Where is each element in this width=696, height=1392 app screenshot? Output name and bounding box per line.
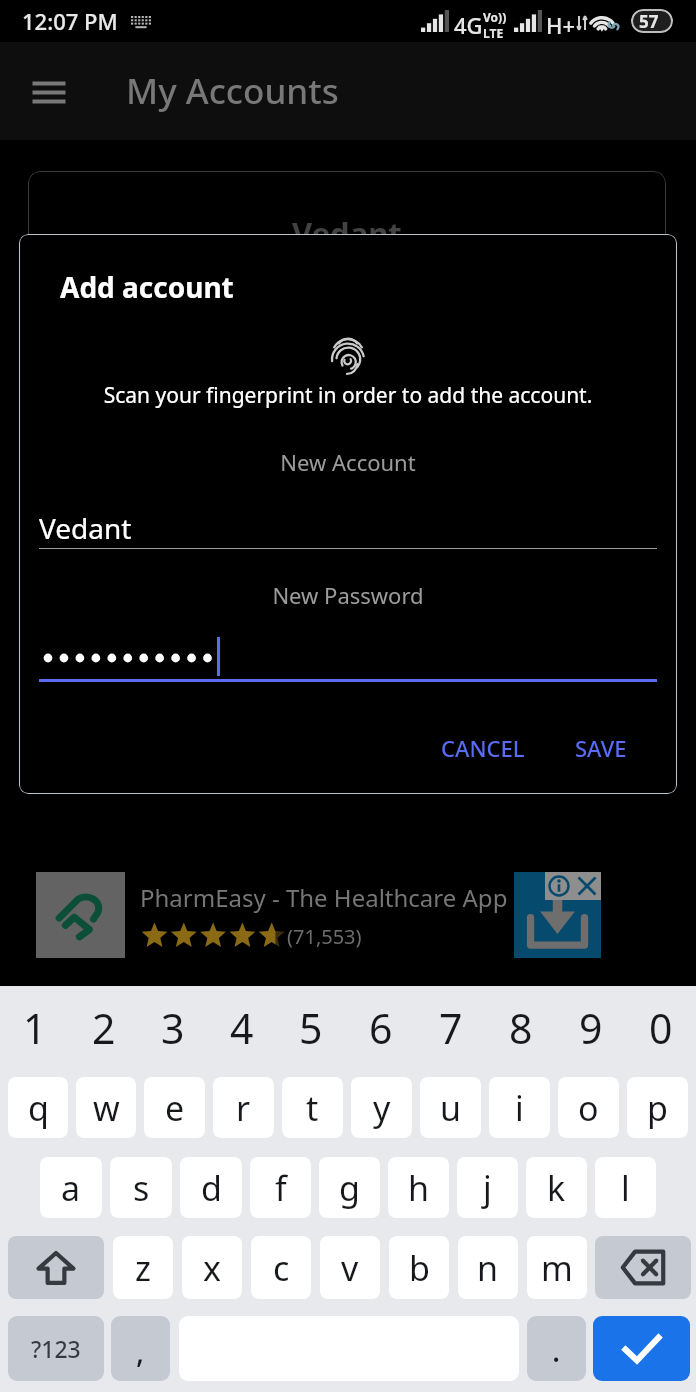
- button[interactable]: k: [526, 1157, 587, 1218]
- button[interactable]: 7: [416, 992, 486, 1064]
- button[interactable]: b: [389, 1236, 449, 1299]
- button[interactable]: e: [144, 1077, 205, 1138]
- staticText: o: [578, 1085, 599, 1131]
- button[interactable]: f: [250, 1157, 311, 1218]
- staticText: My Accounts: [126, 67, 339, 115]
- button[interactable]: w: [76, 1077, 136, 1138]
- staticText: u: [440, 1085, 462, 1131]
- staticText: LTE: [483, 25, 504, 41]
- button[interactable]: Shift: [8, 1236, 104, 1299]
- button[interactable]: Enter: [593, 1316, 690, 1381]
- staticText: Vedant: [39, 509, 132, 547]
- staticText: 9: [579, 1000, 603, 1056]
- button[interactable]: 3: [138, 992, 207, 1064]
- staticText: q: [28, 1085, 49, 1131]
- staticText: j: [483, 1165, 492, 1211]
- button[interactable]: n: [458, 1236, 518, 1299]
- button[interactable]: r: [213, 1077, 274, 1138]
- staticText: z: [135, 1245, 151, 1291]
- staticText: i: [515, 1085, 524, 1131]
- staticText: x: [203, 1245, 221, 1291]
- staticText: 57: [639, 10, 659, 33]
- button[interactable]: i: [489, 1077, 550, 1138]
- button[interactable]: Ad info: [545, 872, 573, 900]
- button[interactable]: p: [627, 1077, 688, 1138]
- staticText: n: [477, 1245, 499, 1291]
- button[interactable]: v: [320, 1236, 380, 1299]
- button[interactable]: c: [251, 1236, 311, 1299]
- button[interactable]: CANCEL: [425, 721, 541, 775]
- staticText: 5: [299, 1000, 323, 1056]
- staticText: l: [621, 1165, 630, 1211]
- button[interactable]: g: [319, 1157, 380, 1218]
- button[interactable]: Close ad: [573, 872, 601, 900]
- button[interactable]: SAVE: [559, 721, 643, 775]
- staticText: (71,553): [287, 923, 362, 950]
- staticText: f: [275, 1165, 287, 1211]
- button[interactable]: t: [282, 1077, 343, 1138]
- staticText: Vo)): [483, 9, 507, 25]
- staticText: r: [236, 1085, 251, 1131]
- staticText: ?123: [31, 1333, 81, 1364]
- button[interactable]: 6: [346, 992, 416, 1064]
- staticText: c: [273, 1245, 290, 1291]
- button[interactable]: a: [40, 1157, 102, 1218]
- staticText: Scan your fingerprint in order to add th…: [19, 381, 677, 410]
- button[interactable]: .: [527, 1316, 586, 1381]
- staticText: h: [408, 1165, 430, 1211]
- button[interactable]: o: [558, 1077, 619, 1138]
- button[interactable]: PharmEasy - The Healthcare App: [36, 872, 601, 958]
- button[interactable]: x: [182, 1236, 242, 1299]
- button[interactable]: ?123: [8, 1316, 104, 1381]
- staticText: 3: [161, 1000, 185, 1056]
- staticText: d: [201, 1165, 222, 1211]
- staticText: SAVE: [575, 733, 627, 763]
- staticText: 8: [509, 1000, 533, 1056]
- button[interactable]: z: [113, 1236, 173, 1299]
- staticText: New Account: [19, 447, 677, 477]
- button[interactable]: 8: [486, 992, 556, 1064]
- button[interactable]: d: [180, 1157, 242, 1218]
- staticText: ,: [136, 1331, 145, 1372]
- staticText: H+: [546, 10, 576, 40]
- staticText: p: [647, 1085, 668, 1131]
- button[interactable]: 1: [0, 992, 69, 1064]
- staticText: s: [133, 1165, 150, 1211]
- button[interactable]: 5: [276, 992, 346, 1064]
- staticText: g: [339, 1165, 360, 1211]
- staticText: Add account: [60, 268, 234, 306]
- button[interactable]: Backspace: [595, 1236, 691, 1299]
- staticText: 6: [369, 1000, 393, 1056]
- staticText: k: [547, 1165, 566, 1211]
- button[interactable]: s: [110, 1157, 172, 1218]
- button[interactable]: u: [420, 1077, 481, 1138]
- staticText: 0: [649, 1000, 673, 1056]
- staticText: v: [341, 1245, 359, 1291]
- staticText: 4: [230, 1000, 254, 1056]
- button[interactable]: y: [351, 1077, 412, 1138]
- staticText: CANCEL: [441, 733, 525, 763]
- staticText: .: [552, 1330, 561, 1371]
- staticText: 2: [92, 1000, 116, 1056]
- button[interactable]: 0: [626, 992, 696, 1064]
- button[interactable]: 9: [556, 992, 626, 1064]
- button[interactable]: h: [388, 1157, 449, 1218]
- staticText: t: [306, 1085, 319, 1131]
- button[interactable]: 4: [207, 992, 276, 1064]
- staticText: Vedant: [292, 212, 402, 254]
- button[interactable]: m: [527, 1236, 587, 1299]
- staticText: m: [541, 1245, 573, 1291]
- button[interactable]: Open navigation menu: [25, 67, 73, 115]
- staticText: w: [93, 1085, 120, 1131]
- staticText: a: [61, 1165, 81, 1211]
- staticText: y: [373, 1085, 391, 1131]
- button[interactable]: j: [457, 1157, 518, 1218]
- button[interactable]: l: [595, 1157, 656, 1218]
- staticText: 7: [439, 1000, 463, 1056]
- button[interactable]: q: [8, 1077, 68, 1138]
- staticText: New Password: [19, 580, 677, 610]
- staticText: 1: [23, 1000, 47, 1056]
- button[interactable]: ,: [111, 1316, 170, 1381]
- button[interactable]: 2: [69, 992, 138, 1064]
